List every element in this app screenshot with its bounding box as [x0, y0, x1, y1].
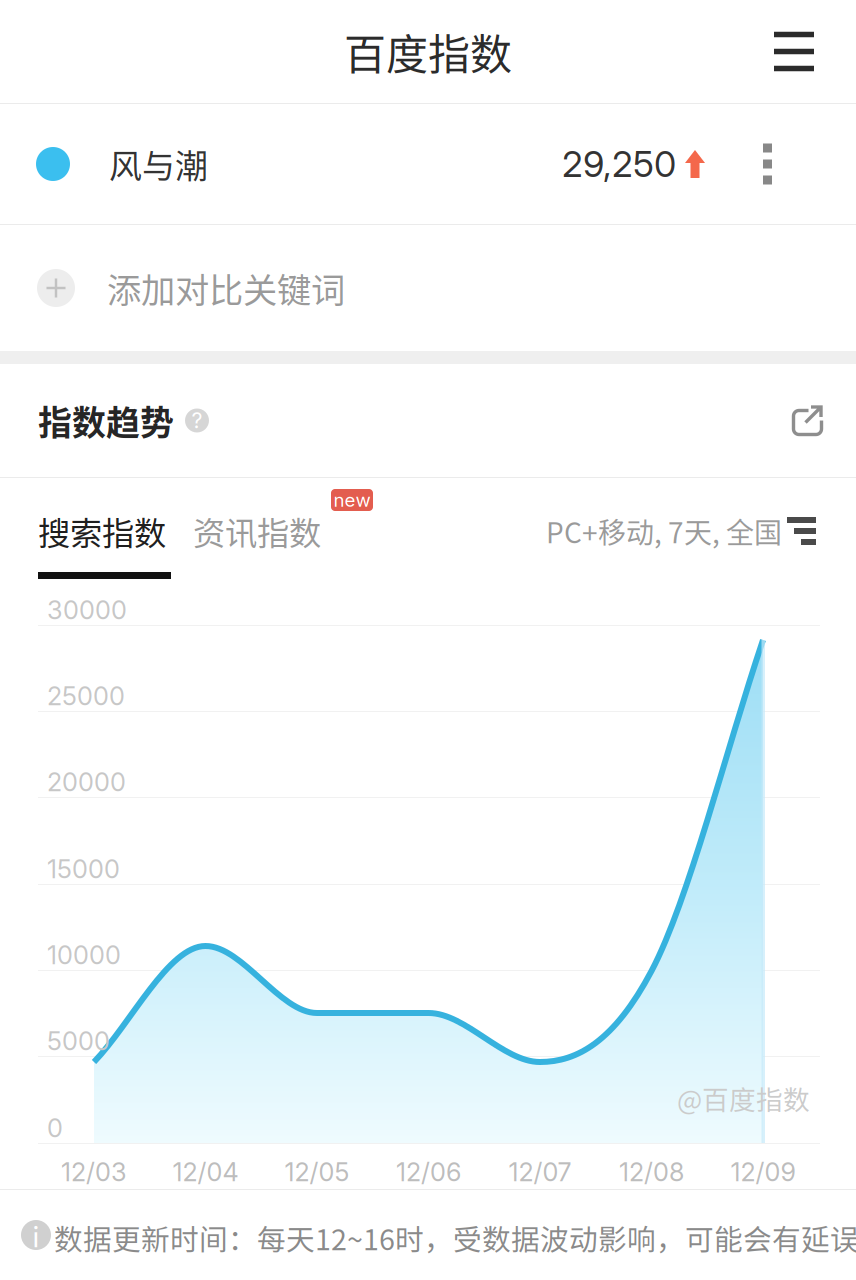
staticText: 12/03 — [61, 1157, 127, 1187]
staticText: 12/04 — [172, 1157, 238, 1187]
staticText: 20000 — [47, 767, 126, 797]
button[interactable]: 搜索指数 — [38, 484, 174, 578]
button[interactable]: 风与潮 — [0, 104, 856, 224]
staticText: 10000 — [47, 940, 121, 970]
staticText: @百度指数 — [677, 1079, 810, 1117]
staticText: 25000 — [47, 681, 125, 711]
button[interactable]: Menu — [753, 3, 856, 99]
staticText: 12/05 — [284, 1157, 349, 1187]
staticText: 资讯指数 — [193, 508, 321, 554]
staticText: 12/08 — [619, 1157, 684, 1187]
staticText: 数据更新时间：每天12~16时，受数据波动影响，可能会有延误 — [54, 1217, 856, 1258]
staticText: 风与潮 — [109, 140, 208, 188]
staticText: 添加对比关键词 — [107, 263, 345, 313]
staticText: 12/09 — [730, 1157, 795, 1187]
staticText: new — [333, 489, 370, 511]
staticText: 12/06 — [396, 1157, 461, 1187]
staticText: 百度指数 — [344, 21, 512, 82]
staticText: 搜索指数 — [38, 508, 166, 554]
staticText: 30000 — [47, 595, 127, 625]
staticText: 29,250 — [562, 142, 676, 186]
staticText: 5000 — [47, 1026, 110, 1056]
staticText: i — [32, 1215, 40, 1255]
staticText: ? — [191, 408, 202, 433]
staticText: 15000 — [47, 854, 120, 884]
staticText: 12/07 — [508, 1157, 571, 1187]
button[interactable]: PC+移动, 7天, 全国 — [546, 484, 816, 578]
staticText: 0 — [47, 1113, 63, 1143]
button[interactable]: Share — [759, 380, 856, 460]
staticText: PC+移动, 7天, 全国 — [546, 511, 782, 551]
button[interactable]: 资讯指数 — [193, 484, 329, 578]
staticText: 指数趋势 — [38, 396, 174, 445]
button[interactable]: 添加对比关键词 — [0, 225, 856, 351]
